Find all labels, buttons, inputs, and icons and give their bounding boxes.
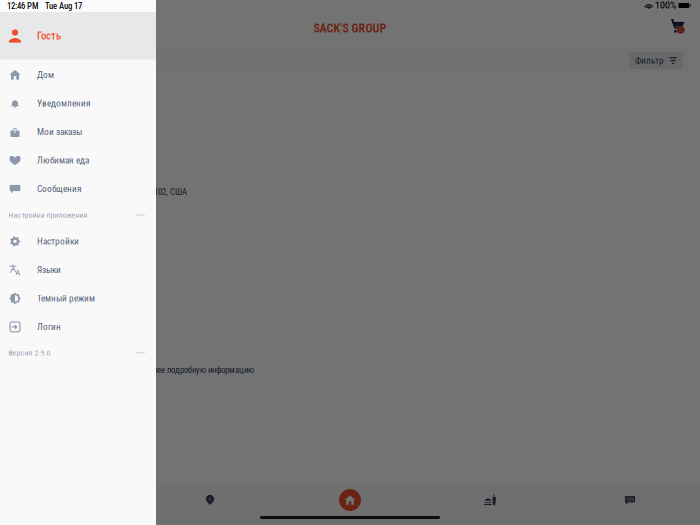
button[interactable]: Tab 5	[560, 485, 700, 515]
button[interactable]: Tab 3	[280, 485, 420, 515]
button[interactable]: Настройки	[0, 227, 156, 256]
staticText: Tue Aug 17	[45, 1, 82, 11]
button[interactable]: Tab 4	[420, 485, 560, 515]
staticText: Фильтр	[635, 55, 664, 66]
staticText: Мои заказы	[37, 126, 82, 137]
staticText: Версия 2.9.0	[8, 348, 50, 357]
button[interactable]: Cart	[668, 16, 694, 40]
staticText: Сообщения	[37, 183, 82, 194]
button[interactable]: Дом	[0, 60, 156, 89]
button[interactable]: Сообщения	[0, 174, 156, 203]
button[interactable]: Любимая еда	[0, 146, 156, 174]
button[interactable]: Tab 2	[140, 485, 280, 515]
staticText: Логин	[37, 321, 61, 332]
button[interactable]: Языки	[0, 256, 156, 284]
button[interactable]: Гость	[0, 12, 156, 59]
staticText: 100%	[655, 0, 676, 11]
staticText: Языки	[37, 264, 61, 275]
staticText: Уведомления	[37, 98, 91, 109]
staticText: SACK'S GROUP	[313, 21, 386, 36]
staticText: Доставка: г. Сан-Франциско, CA 94102, СШ…	[31, 187, 187, 197]
staticText: Темный режим	[37, 293, 95, 304]
button[interactable]: Фильтр	[629, 52, 683, 69]
button[interactable]: Логин	[0, 313, 156, 341]
button[interactable]: Темный режим	[0, 284, 156, 313]
staticText: 12:46 PM	[7, 1, 39, 11]
staticText: Дом	[37, 69, 54, 80]
staticText: Любимая еда	[37, 155, 89, 166]
staticText: Настройки приложения	[8, 210, 87, 220]
staticText: Нажмите на ресторан, чтобы получить боле…	[7, 365, 254, 375]
staticText: Гость	[37, 29, 61, 42]
button[interactable]: Уведомления	[0, 89, 156, 117]
staticText: Настройки	[37, 236, 79, 247]
button[interactable]: Мои заказы	[0, 117, 156, 146]
